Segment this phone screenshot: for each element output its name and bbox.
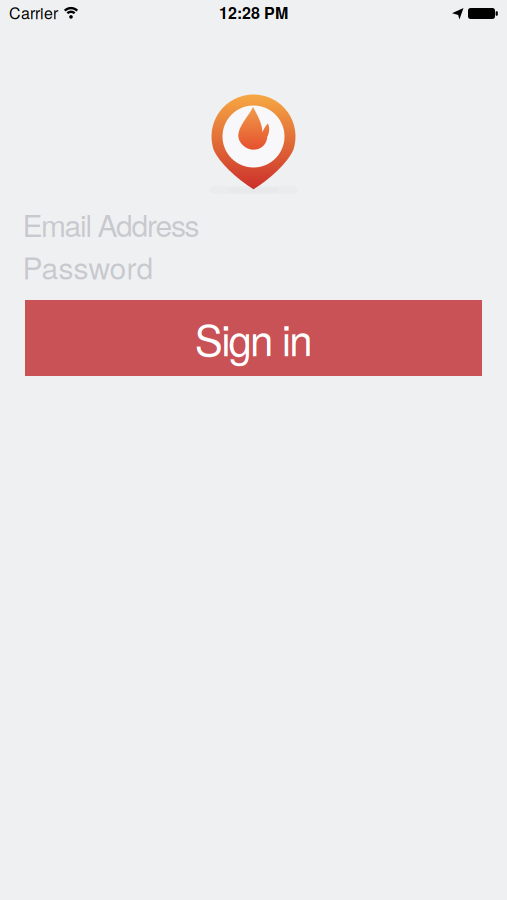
staticText: 12:28 PM bbox=[219, 1, 288, 24]
staticText: Sign in bbox=[195, 308, 312, 368]
staticText: Email Address bbox=[22, 202, 199, 245]
textField[interactable]: Email Address bbox=[22, 204, 479, 244]
textField[interactable]: Password bbox=[22, 246, 479, 286]
staticText: Carrier bbox=[9, 1, 58, 24]
staticText: Password bbox=[22, 245, 153, 288]
button[interactable]: Sign in bbox=[25, 300, 482, 376]
